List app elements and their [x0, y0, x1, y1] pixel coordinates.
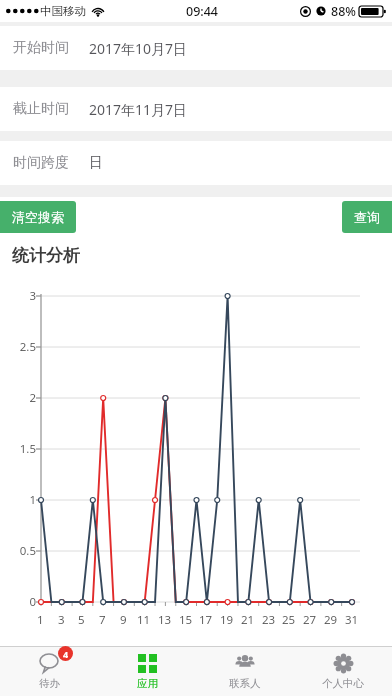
- staticText: 开始时间: [13, 39, 69, 57]
- staticText: 2: [29, 390, 36, 406]
- button[interactable]: 时间跨度: [0, 141, 392, 185]
- staticText: 0.5: [19, 543, 36, 559]
- button[interactable]: 截止时间: [0, 87, 392, 131]
- staticText: 1: [37, 612, 44, 628]
- button[interactable]: 个人中心: [294, 647, 392, 696]
- staticText: 25: [282, 612, 296, 628]
- staticText: 3: [58, 612, 65, 628]
- other: 联系人: [235, 653, 255, 673]
- staticText: 中国移动: [40, 4, 86, 18]
- staticText: 2.5: [19, 339, 36, 355]
- staticText: 1: [29, 492, 36, 508]
- staticText: 27: [303, 612, 317, 628]
- other: 应用: [138, 654, 157, 673]
- staticText: 应用: [137, 677, 158, 690]
- staticText: 2017年11月7日: [89, 100, 188, 119]
- button[interactable]: 待办: [0, 647, 98, 696]
- staticText: 21: [241, 612, 255, 628]
- staticText: 0: [29, 594, 36, 610]
- other: 个人中心: [334, 654, 353, 673]
- staticText: 17: [199, 612, 213, 628]
- button[interactable]: 清空搜索: [0, 201, 76, 233]
- staticText: 11: [137, 612, 151, 628]
- other: 待办: [39, 653, 59, 673]
- staticText: 个人中心: [322, 677, 364, 690]
- staticText: 19: [220, 612, 234, 628]
- staticText: 5: [78, 612, 85, 628]
- staticText: 7: [99, 612, 106, 628]
- staticText: 09:44: [186, 3, 219, 20]
- button[interactable]: 联系人: [196, 647, 294, 696]
- staticText: 统计分析: [12, 245, 80, 266]
- staticText: 1.5: [19, 441, 36, 457]
- staticText: 88%: [331, 3, 356, 20]
- staticText: 时间跨度: [13, 154, 69, 172]
- staticText: 联系人: [229, 677, 261, 690]
- staticText: 待办: [39, 677, 60, 690]
- button[interactable]: 查询: [342, 201, 392, 233]
- staticText: 13: [158, 612, 172, 628]
- staticText: 15: [179, 612, 193, 628]
- staticText: 23: [262, 612, 276, 628]
- button[interactable]: 应用: [98, 647, 196, 696]
- staticText: 9: [120, 612, 127, 628]
- staticText: 截止时间: [13, 100, 69, 118]
- staticText: 4: [63, 648, 69, 660]
- staticText: 2017年10月7日: [89, 39, 188, 58]
- staticText: 清空搜索: [12, 209, 64, 225]
- staticText: 29: [324, 612, 338, 628]
- staticText: 3: [29, 288, 36, 304]
- staticText: 日: [89, 154, 103, 172]
- staticText: 31: [345, 612, 359, 628]
- button[interactable]: 开始时间: [0, 26, 392, 70]
- staticText: 查询: [354, 209, 380, 225]
